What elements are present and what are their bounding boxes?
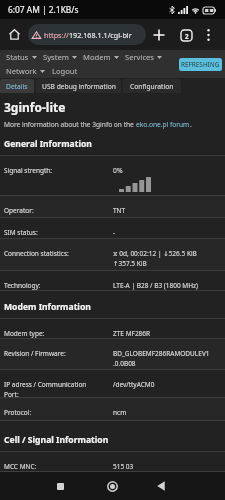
staticText: ZTE MF286R — [113, 329, 151, 338]
button[interactable]: New tab — [148, 24, 170, 46]
staticText: Cell / Signal Information — [4, 434, 109, 446]
staticText: IP adress / Communication Port: — [4, 380, 87, 397]
staticText: MCC MNC: — [4, 462, 37, 471]
button[interactable]: Services — [125, 52, 162, 62]
button[interactable]: Open tabs, 2 — [175, 24, 197, 46]
staticText: Configuration — [130, 82, 174, 91]
staticText: Modem type: — [4, 329, 45, 338]
staticText: 0% — [113, 166, 123, 175]
button[interactable]: Logout — [52, 66, 78, 76]
staticText: Modem Information — [4, 301, 91, 313]
staticText: . — [190, 120, 192, 129]
staticText: 6:07 AM | 2.1KB/s — [8, 4, 79, 15]
staticText: 3ginfo-lite — [4, 99, 66, 115]
staticText: 2 — [185, 32, 189, 40]
staticText: Status — [6, 52, 29, 62]
button[interactable]: More options — [197, 24, 219, 46]
staticText: Operator: — [4, 206, 34, 215]
staticText: SIM status: — [4, 228, 38, 237]
staticText: Revision / Firmware: — [4, 349, 66, 358]
staticText: ⧖ 0d, 00:02:12 | ↓526.5 KiB ↑357.5 KiB — [113, 249, 197, 268]
button[interactable]: System — [43, 52, 77, 62]
staticText: 515 03 — [113, 462, 134, 471]
staticText: /dev/ttyACM0 — [113, 380, 155, 389]
staticText: - — [113, 228, 116, 237]
button[interactable]: Details — [0, 79, 34, 93]
button[interactable]: Status — [6, 52, 37, 62]
staticText: Connection statistics: — [4, 249, 69, 258]
staticText: Protocol: — [4, 408, 32, 417]
staticText: Details — [6, 82, 28, 91]
staticText: REFRESHING — [181, 60, 220, 69]
staticText: LTE-A | B28 / B3 (1800 MHz) — [113, 281, 199, 290]
staticText: System — [43, 52, 69, 62]
button[interactable]: USB debug information — [36, 79, 121, 93]
button[interactable]: Modem — [83, 52, 119, 62]
staticText: Network — [6, 66, 37, 76]
staticText: BD_GLOBEMF286RAMODULEV1 .0.0B08 — [113, 349, 210, 368]
staticText: TNT — [113, 206, 126, 215]
button[interactable]: Configuration — [123, 79, 181, 93]
button[interactable]: Recent apps — [48, 474, 72, 498]
button[interactable]: REFRESHING — [179, 58, 222, 71]
button[interactable]: Home — [100, 474, 124, 498]
staticText: 192.168.1.1/cgi-bir — [69, 30, 132, 40]
staticText: Modem — [83, 52, 111, 62]
staticText: Logout — [52, 66, 78, 76]
staticText: Services — [125, 52, 154, 62]
button[interactable]: Network — [6, 66, 45, 76]
button[interactable]: eko.one.pl forum — [136, 120, 190, 129]
staticText: ncm — [113, 408, 127, 417]
staticText: USB debug information — [42, 82, 116, 91]
button[interactable]: Back — [149, 474, 173, 498]
staticText: https:// — [44, 30, 69, 40]
button[interactable]: Home — [3, 23, 26, 46]
staticText: More information about the 3ginfo on the — [4, 120, 136, 129]
button[interactable]: https:// — [28, 24, 146, 45]
staticText: Technology: — [4, 281, 41, 290]
staticText: Signal strength: — [4, 166, 53, 175]
staticText: General Information — [4, 138, 92, 150]
